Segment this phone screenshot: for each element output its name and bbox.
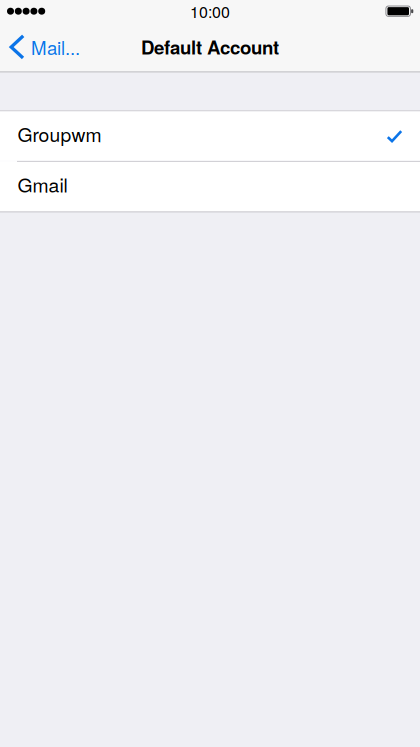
staticText: Default Account <box>141 33 279 60</box>
button[interactable]: Gmail <box>0 162 420 211</box>
staticText: 10:00 <box>190 0 230 23</box>
staticText: Mail... <box>31 33 80 60</box>
button[interactable]: Back to Mail <box>0 22 88 71</box>
staticText: Groupwm <box>18 120 102 147</box>
staticText: Gmail <box>18 170 68 198</box>
button[interactable]: Selected <box>0 111 420 161</box>
